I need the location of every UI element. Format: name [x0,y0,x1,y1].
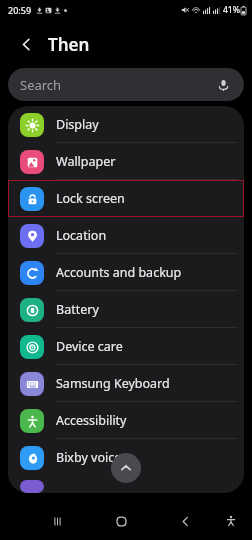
button[interactable]: Back [12,30,40,58]
button[interactable]: Accounts and backup [8,254,244,291]
staticText: Battery [56,301,99,318]
button[interactable]: Device care [8,328,244,365]
button[interactable]: Search [8,68,244,101]
staticText: Display [56,116,99,133]
button[interactable]: Recents [40,504,74,538]
button[interactable] [8,476,244,493]
staticText: Accessibility [56,412,127,429]
button[interactable]: Voice search [214,76,232,94]
staticText: Search [20,76,214,94]
staticText: Location [56,227,107,244]
staticText: 20:59 [8,4,32,16]
button[interactable]: Accessibility [216,506,246,536]
staticText: Then [48,33,90,56]
button[interactable]: Display [8,106,244,143]
staticText: Device care [56,338,123,355]
staticText: Wallpaper [56,153,116,170]
button[interactable]: Wallpaper [8,143,244,180]
button[interactable]: Accessibility [8,402,244,439]
staticText: Samsung Keyboard [56,375,170,392]
button[interactable]: Bixby voice [8,439,244,476]
staticText: 41% [223,4,240,16]
button[interactable]: Battery [8,291,244,328]
button[interactable]: Location [8,217,244,254]
button[interactable]: Back [168,504,202,538]
button[interactable]: Scroll to top [111,453,141,483]
staticText: Accounts and backup [56,264,182,281]
staticText: Bixby voice [56,449,122,466]
button[interactable]: Samsung Keyboard [8,365,244,402]
button[interactable]: Lock screen [8,180,244,217]
button[interactable]: Home [104,504,138,538]
staticText: Lock screen [56,190,125,207]
